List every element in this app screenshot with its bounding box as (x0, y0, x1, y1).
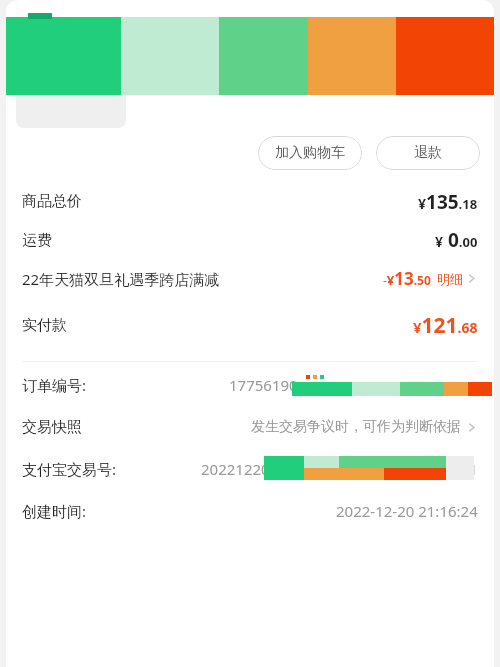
staticText: 商品总价 (22, 192, 82, 211)
staticText: ¥135.18 (418, 189, 478, 215)
staticText: -¥13.50 (383, 267, 431, 290)
staticText: 订单编号: (22, 375, 87, 395)
staticText: 退款 (414, 144, 442, 162)
staticText: 加入购物车 (275, 144, 345, 162)
button[interactable]: 加入购物车 (258, 136, 362, 170)
staticText: 交易快照 (22, 418, 82, 437)
staticText: 22年天猫双旦礼遇季跨店满减 (22, 269, 220, 289)
staticText: 创建时间: (22, 501, 87, 521)
staticText: 发生交易争议时，可作为判断依据 (251, 418, 461, 436)
button[interactable]: 22年天猫双旦礼遇季跨店满减 (22, 255, 478, 302)
staticText: 12月27日 21:17前发货，受疫情 (144, 44, 349, 64)
staticText: 1 (469, 459, 478, 479)
staticText: 支付宝交易号: (22, 459, 117, 479)
button[interactable]: 交易快照 (22, 406, 478, 448)
staticText: 202212202 (201, 459, 279, 479)
staticText: ¥121.68 (413, 311, 478, 340)
staticText: ¥ 0.00 (435, 227, 478, 253)
staticText: 17756190 (229, 375, 298, 395)
staticText: 影响，物流时效可能延迟 (144, 64, 304, 82)
button[interactable]: 退款 (376, 136, 480, 170)
staticText: 实付款 (22, 316, 67, 335)
staticText: 明细 (437, 271, 463, 287)
staticText: 2022-12-20 21:16:24 (336, 501, 478, 521)
staticText: 运费 (22, 231, 52, 250)
